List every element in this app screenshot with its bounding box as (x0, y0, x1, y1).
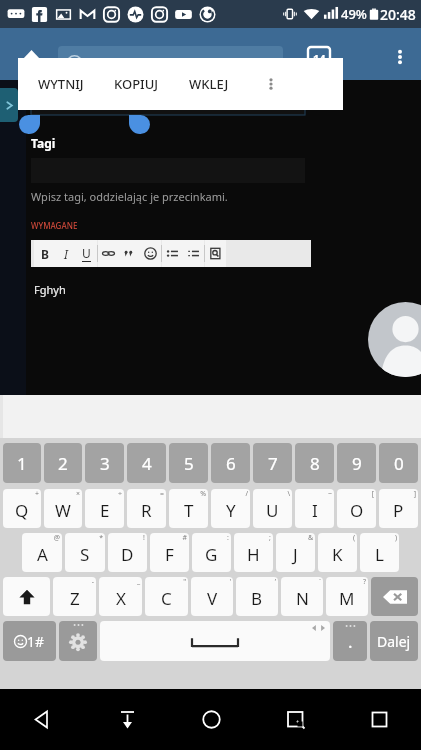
button[interactable]: A (22, 533, 62, 572)
button[interactable]: F (150, 533, 189, 572)
staticText: & (307, 533, 313, 543)
staticText: ? (362, 577, 366, 587)
button[interactable]: Screenshot (253, 689, 337, 750)
button[interactable]: W (44, 489, 82, 528)
button[interactable]: Hide keyboard (85, 689, 169, 750)
staticText: 7 (268, 452, 278, 475)
button[interactable]: Space (100, 621, 330, 661)
button[interactable]: N (281, 577, 323, 616)
button[interactable]: 4 (127, 443, 166, 483)
button[interactable]: X (99, 577, 142, 616)
staticText: M (339, 587, 355, 610)
staticText: 9 (352, 452, 362, 475)
button[interactable]: 6 (211, 443, 250, 483)
staticText: . (348, 630, 353, 653)
staticText: - (91, 577, 94, 587)
button[interactable]: P (379, 489, 418, 528)
button[interactable]: Y (211, 489, 250, 528)
button[interactable]: B (236, 577, 278, 616)
button[interactable]: Q (3, 489, 41, 528)
button[interactable]: 7 (253, 443, 292, 483)
button[interactable]: Recents (337, 689, 421, 750)
button[interactable]: 2 (44, 443, 82, 483)
button[interactable]: O (337, 489, 376, 528)
button[interactable]: 8 (295, 443, 334, 483)
staticText: I (64, 246, 68, 262)
button[interactable]: 1 (3, 443, 41, 483)
staticText: L (375, 543, 384, 566)
button[interactable]: C (145, 577, 188, 616)
staticText: O (350, 499, 364, 522)
staticText: 2 (58, 452, 68, 475)
button[interactable]: Back (0, 689, 85, 750)
button[interactable]: Period (333, 621, 367, 661)
staticText: 20:48 (380, 5, 416, 24)
button[interactable]: G (192, 533, 231, 572)
button[interactable]: KOPIUJ (112, 58, 161, 110)
button[interactable]: J (276, 533, 315, 572)
button[interactable]: Backspace (371, 577, 418, 616)
button[interactable]: U (253, 489, 292, 528)
button[interactable]: Open sidebar (0, 88, 18, 122)
button[interactable]: More (257, 58, 285, 110)
button[interactable]: I (295, 489, 334, 528)
button[interactable]: WYTNIJ (36, 58, 86, 110)
staticText: 4 (142, 452, 152, 475)
button[interactable]: U (76, 240, 97, 267)
button[interactable]: WKLEJ (187, 58, 231, 110)
staticText: ( (352, 533, 355, 543)
staticText: B (41, 246, 49, 262)
staticText: ` (319, 577, 321, 587)
staticText: ~ (327, 489, 332, 499)
button[interactable]: V (191, 577, 233, 616)
button[interactable]: T (169, 489, 208, 528)
staticText: Y (226, 499, 236, 522)
button[interactable]: 3 (85, 443, 124, 483)
staticText: WYTNIJ (38, 75, 84, 93)
staticText: W (55, 499, 71, 522)
button[interactable]: D (108, 533, 147, 572)
staticText: ' (229, 577, 231, 587)
button[interactable]: Page info (58, 46, 283, 80)
button[interactable]: 0 (379, 443, 418, 483)
staticText: Q (15, 499, 29, 522)
staticText: J (293, 543, 298, 566)
button[interactable]: Preview (205, 240, 226, 267)
button[interactable]: Bulleted list (162, 240, 183, 267)
button[interactable]: 1# (3, 621, 56, 661)
button[interactable]: More options (379, 36, 421, 78)
button[interactable]: Z (53, 577, 96, 616)
staticText: 0 (394, 452, 404, 475)
button[interactable]: Shift (3, 577, 50, 616)
staticText: WYMAGANE (31, 220, 78, 231)
staticText: _ (136, 577, 140, 587)
button[interactable]: M (326, 577, 368, 616)
staticText: @ (53, 533, 60, 543)
button[interactable]: Home (169, 689, 253, 750)
button[interactable]: Settings (59, 621, 97, 661)
button[interactable]: Quote (119, 240, 140, 267)
staticText: F (165, 543, 174, 566)
button[interactable]: 5 (169, 443, 208, 483)
button[interactable]: B (34, 240, 55, 267)
button[interactable]: Link (98, 240, 119, 267)
button[interactable]: S (65, 533, 105, 572)
staticText: I (312, 499, 318, 522)
button[interactable]: Emoji (140, 240, 161, 267)
button[interactable]: E (85, 489, 124, 528)
button[interactable]: 9 (337, 443, 376, 483)
button[interactable]: K (318, 533, 357, 572)
button[interactable]: Dalej (370, 621, 418, 661)
button[interactable]: R (127, 489, 166, 528)
staticText: × (75, 489, 80, 499)
button[interactable]: L (360, 533, 399, 572)
button[interactable]: I (55, 240, 76, 267)
button[interactable]: Bhhhhhgggabqbava (31, 87, 305, 115)
button[interactable]: Numbered list (183, 240, 204, 267)
staticText: T (184, 499, 194, 522)
button[interactable]: Tabs (308, 47, 330, 69)
staticText: K (332, 543, 343, 566)
button[interactable]: H (234, 533, 273, 572)
